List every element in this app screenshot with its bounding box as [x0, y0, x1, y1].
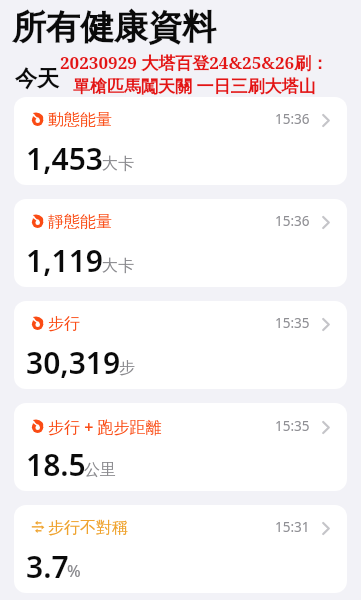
- button[interactable]: 步行不對稱: [14, 505, 347, 593]
- button[interactable]: 步行 + 跑步距離: [14, 403, 347, 491]
- staticText: 步行不對稱: [48, 518, 128, 538]
- button[interactable]: 靜態能量: [14, 199, 347, 287]
- staticText: 20230929 大塔百登24&25&26刷：: [60, 51, 329, 74]
- staticText: 3.7: [26, 546, 69, 587]
- staticText: %: [67, 560, 81, 582]
- staticText: 15:36: [275, 110, 310, 128]
- staticText: 15:36: [275, 212, 310, 230]
- staticText: 步行: [48, 314, 80, 334]
- staticText: 單槍匹馬闖天關 一日三刷大塔山: [73, 74, 316, 97]
- staticText: 步: [119, 358, 135, 378]
- staticText: 步行 + 跑步距離: [48, 416, 162, 438]
- staticText: 18.5: [26, 444, 86, 485]
- staticText: 公里: [84, 460, 116, 480]
- staticText: 15:35: [275, 314, 310, 332]
- staticText: 1,453: [26, 138, 104, 179]
- staticText: 所有健康資料: [12, 6, 216, 49]
- staticText: 15:31: [275, 518, 310, 536]
- button[interactable]: 步行: [14, 301, 347, 389]
- staticText: 大卡: [102, 256, 134, 276]
- staticText: 靜態能量: [48, 212, 112, 232]
- staticText: 30,319: [26, 342, 121, 383]
- staticText: 大卡: [102, 154, 134, 174]
- staticText: 1,119: [26, 240, 104, 281]
- staticText: 15:35: [275, 417, 310, 435]
- staticText: 今天: [15, 65, 59, 93]
- button[interactable]: 動態能量: [14, 97, 347, 185]
- staticText: 動態能量: [48, 110, 112, 130]
